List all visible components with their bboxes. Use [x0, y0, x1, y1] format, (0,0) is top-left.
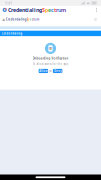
staticText: Allow	[39, 69, 47, 73]
staticText: p	[28, 18, 30, 21]
button[interactable]: Allow	[39, 69, 48, 73]
button[interactable]: More options	[93, 6, 99, 14]
staticText: p	[45, 6, 48, 13]
staticText: u	[35, 18, 37, 21]
staticText: r	[34, 18, 35, 21]
staticText: u	[58, 6, 61, 13]
staticText: Credentialing	[2, 32, 23, 35]
button[interactable]: Deny	[53, 69, 62, 73]
button[interactable]: Reload page	[93, 14, 99, 24]
staticText: Credentialing	[6, 18, 27, 21]
staticText: m	[61, 6, 66, 13]
staticText: t	[54, 6, 56, 13]
staticText: S	[42, 6, 45, 13]
staticText: Deny	[54, 69, 61, 73]
staticText: e	[48, 6, 51, 13]
staticText: r	[56, 6, 58, 13]
staticText: e	[30, 18, 32, 21]
staticText: t	[33, 18, 34, 21]
staticText: Credentialing	[8, 6, 42, 13]
staticText: Onboarding Verification	[32, 57, 68, 60]
staticText: c	[32, 18, 33, 21]
staticText: To allow access for the app	[32, 62, 68, 66]
staticText: S	[27, 18, 28, 21]
staticText: 9:41	[5, 0, 12, 5]
staticText: m	[37, 18, 40, 21]
staticText: c	[51, 6, 54, 13]
